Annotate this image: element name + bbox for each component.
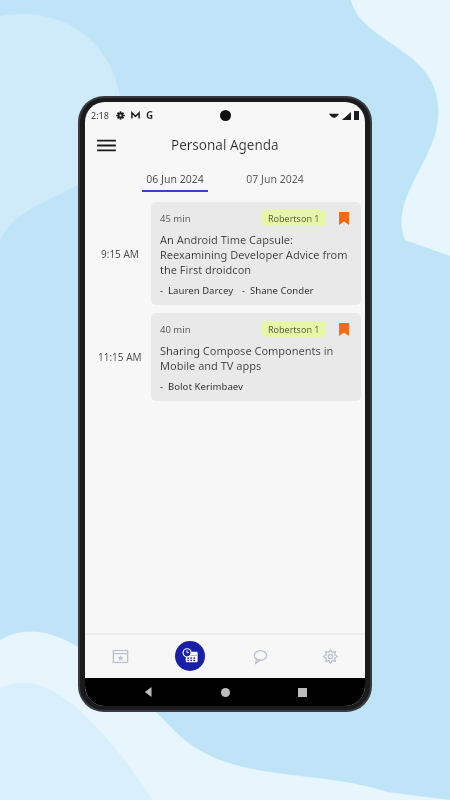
button[interactable]: Agenda [155, 634, 225, 678]
staticText: - Lauren Darcey [160, 284, 234, 297]
button[interactable]: 07 Jun 2024 [236, 172, 314, 192]
staticText: 07 Jun 2024 [246, 172, 304, 186]
button[interactable]: Home [212, 679, 238, 705]
staticText: Robertson 1 [268, 323, 320, 335]
button[interactable]: Saved sessions [85, 634, 155, 678]
button[interactable]: Open navigation menu [89, 128, 123, 162]
staticText: - Bolot Kerimbaev [160, 380, 244, 393]
staticText: Sharing Compose Components in Mobile and… [160, 343, 352, 373]
staticText: Robertson 1 [268, 212, 320, 224]
button[interactable]: Messages [225, 634, 295, 678]
staticText: An Android Time Capsule: Reexamining Dev… [160, 232, 352, 277]
staticText: G [146, 108, 154, 122]
button[interactable]: Bookmark session [336, 321, 352, 337]
staticText: 06 Jun 2024 [146, 172, 204, 186]
button[interactable]: Bookmark session [336, 210, 352, 226]
staticText: 2:18 [91, 109, 109, 121]
staticText: 9:15 AM [101, 247, 139, 261]
button[interactable]: 06 Jun 2024 [136, 172, 214, 192]
button[interactable]: 45 min [151, 202, 361, 305]
staticText: Personal Agenda [171, 136, 279, 154]
button[interactable]: Settings [295, 634, 365, 678]
staticText: 45 min [160, 212, 191, 225]
staticText: - Shane Conder [242, 284, 314, 297]
button[interactable]: Recent apps [289, 679, 315, 705]
button[interactable]: Back [136, 679, 162, 705]
staticText: 40 min [160, 323, 191, 336]
button[interactable]: 40 min [151, 313, 361, 401]
staticText: 11:15 AM [98, 350, 142, 364]
